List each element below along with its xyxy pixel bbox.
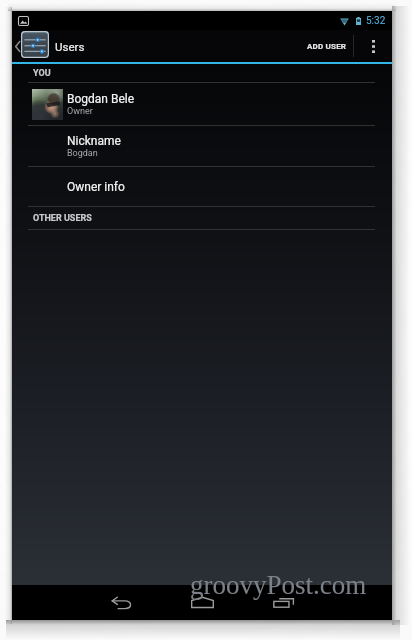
button[interactable]: Bogdan Bele (12, 83, 392, 125)
button[interactable]: Navigate up (12, 33, 93, 60)
button[interactable]: More options (354, 30, 392, 62)
staticText: YOU (33, 68, 51, 79)
button[interactable]: Back (104, 585, 138, 620)
staticText: Owner (67, 106, 93, 117)
staticText: Nickname (67, 134, 121, 148)
button[interactable]: Owner info (12, 167, 392, 206)
button[interactable]: Home (185, 585, 219, 620)
staticText: ADD USER (307, 42, 347, 51)
staticText: Bogdan Bele (67, 92, 135, 106)
staticText: 5:32 (366, 15, 386, 27)
staticText: Owner info (67, 180, 125, 194)
staticText: Bogdan (67, 148, 98, 159)
button[interactable]: ADD USER (301, 30, 353, 62)
button[interactable]: Nickname (12, 126, 392, 166)
button[interactable]: Recent apps (266, 585, 300, 620)
staticText: Users (55, 40, 85, 53)
staticText: OTHER USERS (33, 213, 92, 224)
other: Navigate up (15, 41, 20, 52)
staticText: groovyPost.com (190, 570, 367, 600)
